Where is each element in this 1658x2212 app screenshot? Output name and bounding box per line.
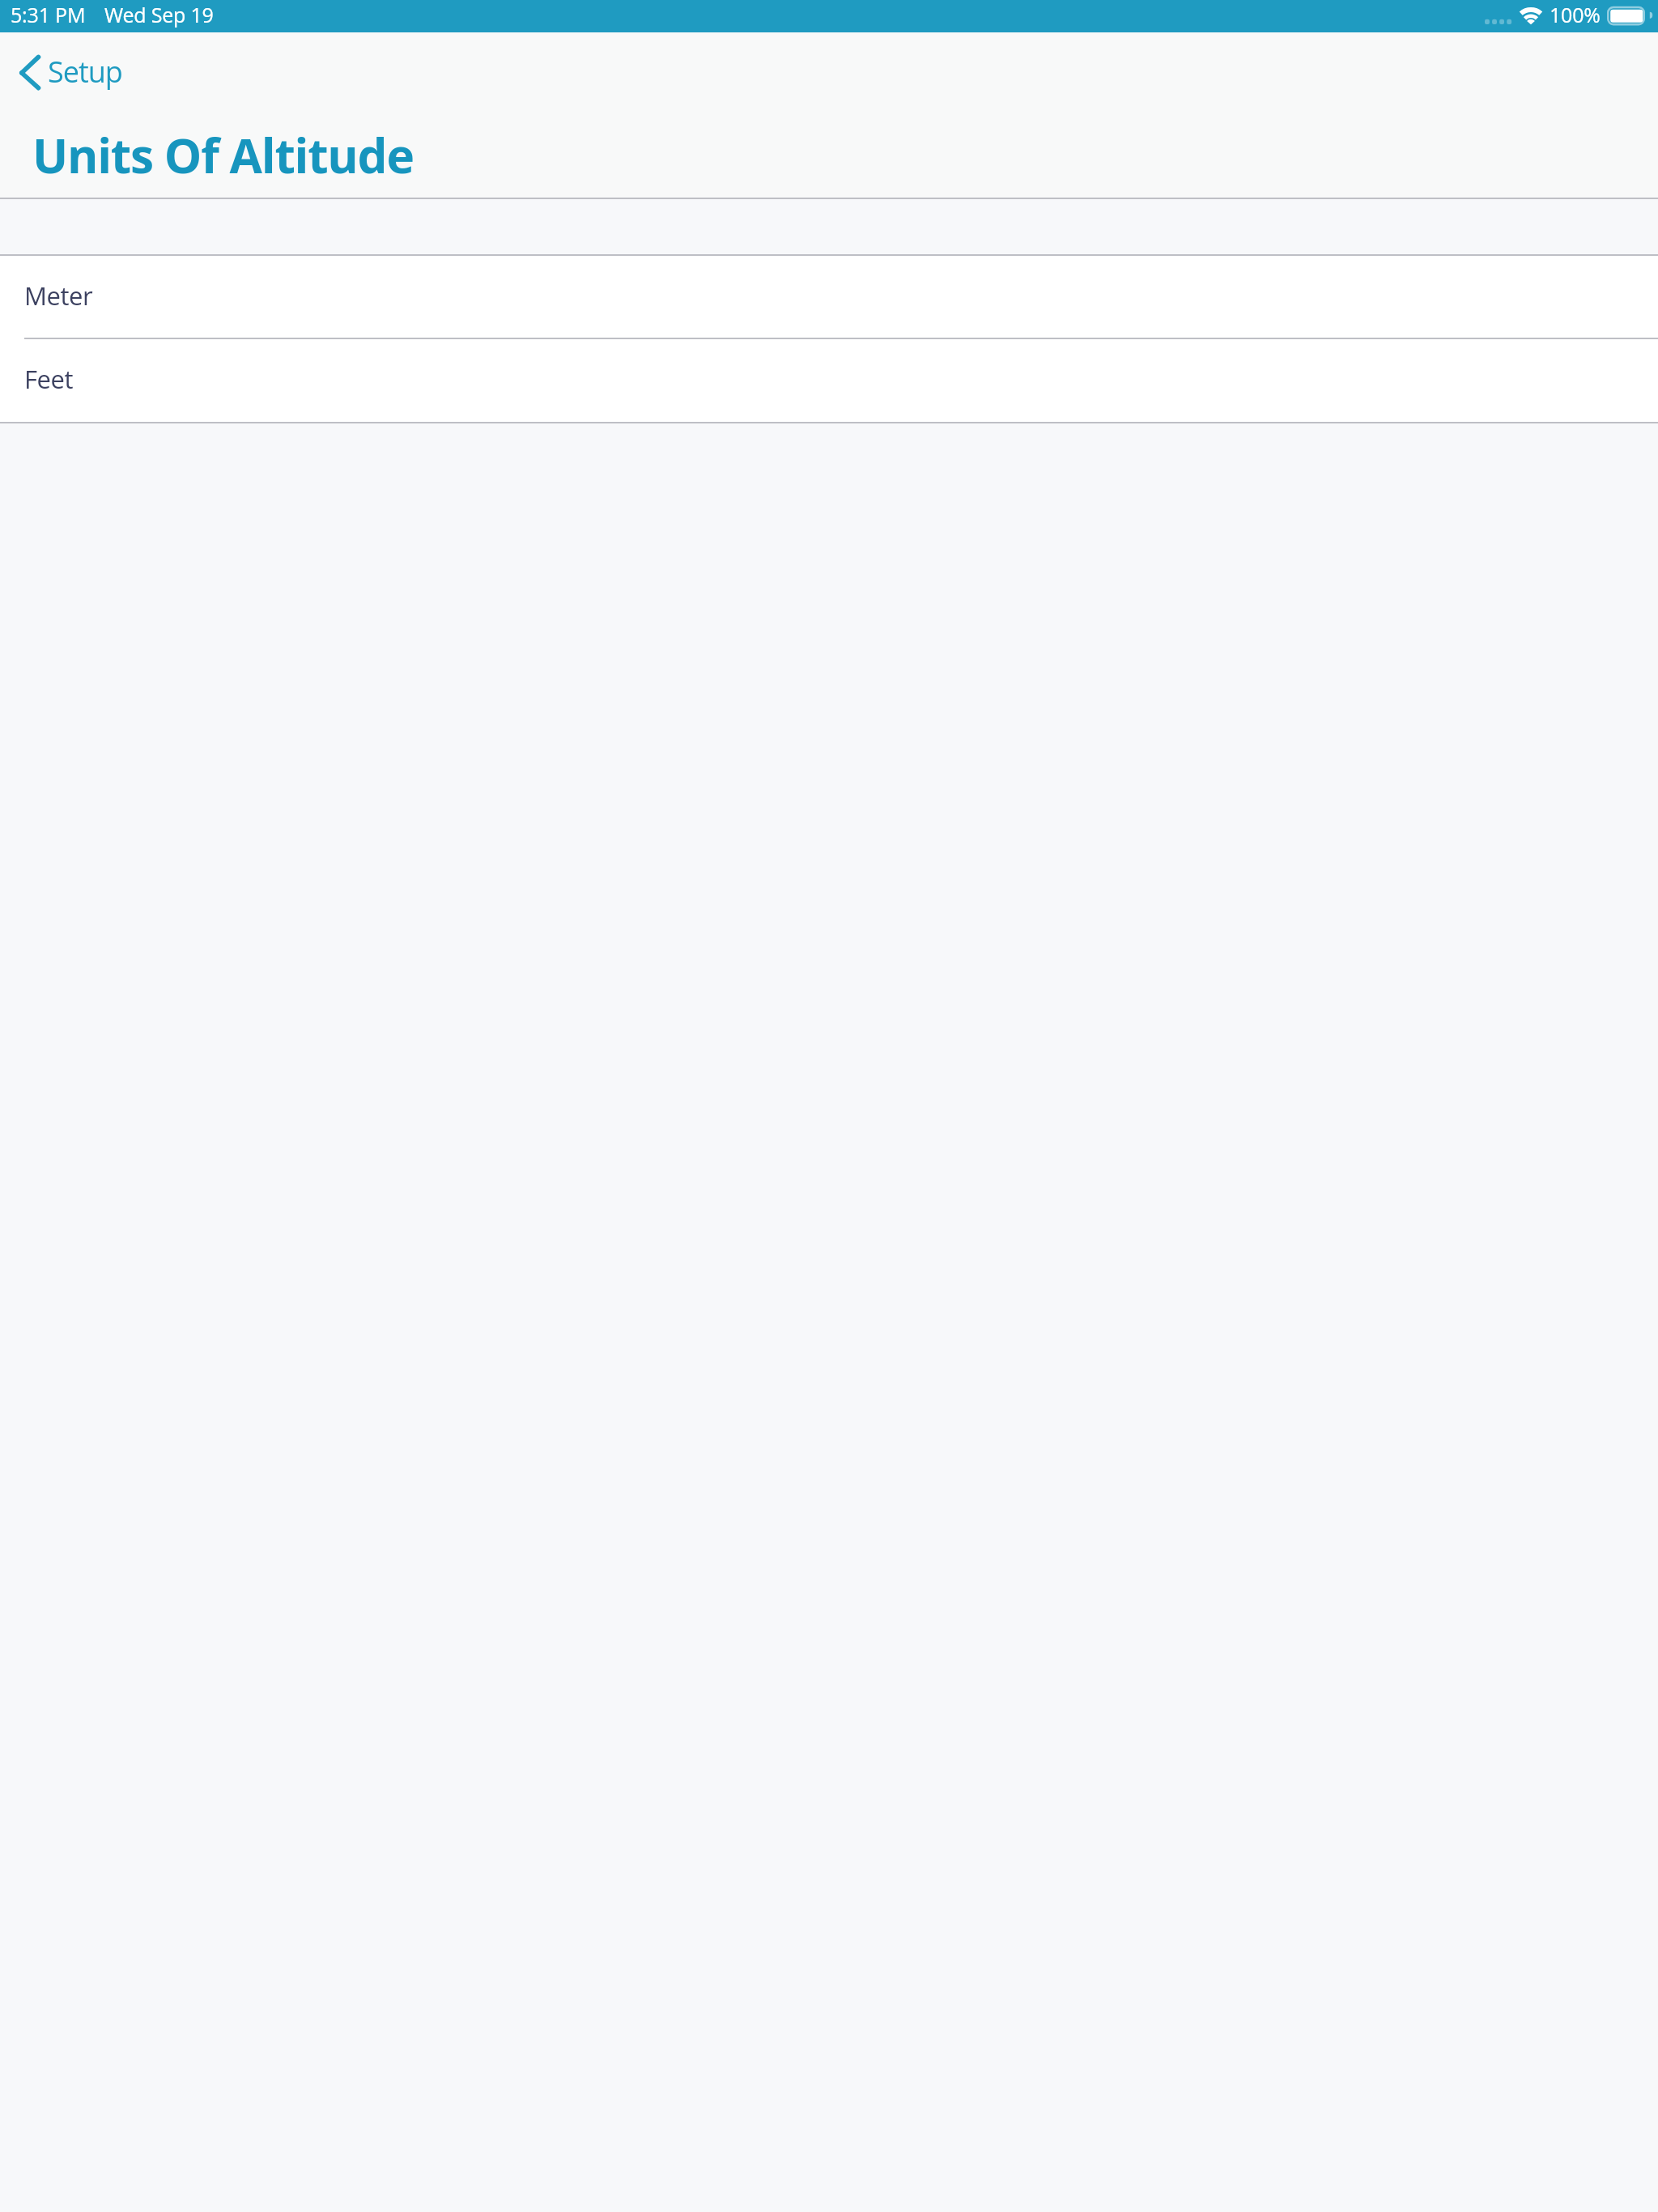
staticText: 5:31 PM	[11, 1, 86, 28]
staticText: Wed Sep 19	[104, 1, 214, 28]
staticText: Units Of Altitude	[32, 122, 414, 187]
button[interactable]: Feet	[0, 339, 1658, 422]
staticText: Feet	[24, 362, 74, 396]
staticText: Meter	[24, 279, 93, 313]
button[interactable]: Meter	[0, 256, 1658, 338]
staticText: 100%	[1550, 1, 1601, 28]
staticText: Setup	[48, 52, 122, 91]
button[interactable]: Back to Setup	[15, 47, 131, 92]
